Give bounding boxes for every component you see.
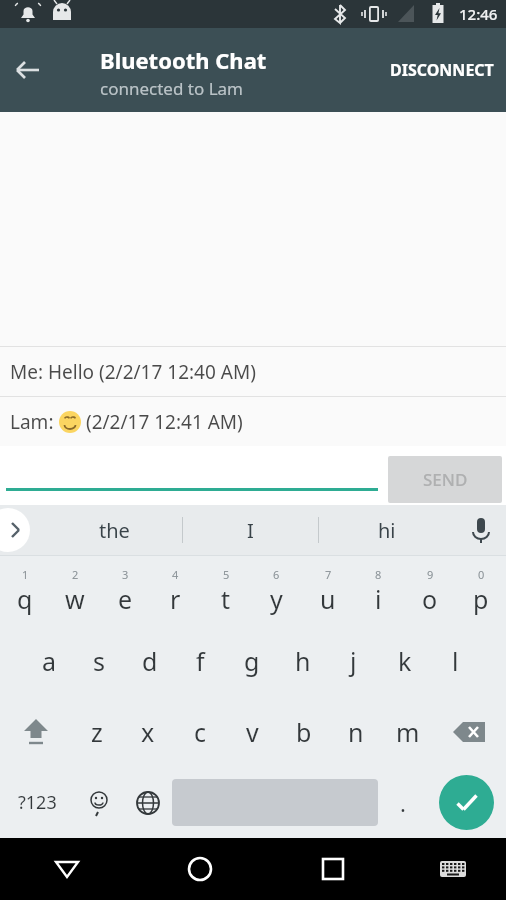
button[interactable]: s xyxy=(74,626,124,696)
staticText: SEND xyxy=(423,468,468,491)
button[interactable]: x xyxy=(122,696,174,767)
button[interactable]: DISCONNECT xyxy=(378,28,506,112)
button[interactable]: g xyxy=(226,626,277,696)
staticText: (2/2/17 12:41 AM) xyxy=(81,409,243,435)
staticText: the xyxy=(99,517,130,544)
button[interactable]: Shift xyxy=(0,696,71,767)
button[interactable]: Delete xyxy=(434,696,506,767)
staticText: g xyxy=(244,644,260,678)
button[interactable]: Recent apps xyxy=(266,838,399,900)
staticText: u xyxy=(320,582,336,616)
staticText: l xyxy=(452,644,459,678)
staticText: w xyxy=(65,582,85,616)
staticText: 2 xyxy=(72,567,79,582)
button[interactable]: hi xyxy=(319,505,454,555)
button[interactable]: ?123 xyxy=(0,767,74,838)
button[interactable]: h xyxy=(277,626,328,696)
staticText: Bluetooth Chat xyxy=(100,45,267,75)
button[interactable]: f xyxy=(175,626,226,696)
staticText: d xyxy=(142,644,158,678)
button[interactable]: n xyxy=(330,696,382,767)
staticText: 8 xyxy=(375,567,382,582)
staticText: c xyxy=(194,715,207,749)
staticText: connected to Lam xyxy=(100,77,243,100)
staticText: 9 xyxy=(427,567,434,582)
button[interactable]: 3 xyxy=(100,556,150,626)
button[interactable]: 1 xyxy=(0,556,50,626)
button[interactable]: SEND xyxy=(388,456,502,503)
button[interactable]: 6 xyxy=(251,556,302,626)
staticText: o xyxy=(422,582,438,616)
button[interactable]: Enter xyxy=(439,775,494,830)
staticText: Lam: xyxy=(10,409,59,435)
staticText: x xyxy=(141,715,155,749)
button[interactable]: 5 xyxy=(200,556,251,626)
button[interactable]: a xyxy=(24,626,74,696)
staticText: f xyxy=(196,644,205,678)
staticText: y xyxy=(270,582,283,616)
staticText: s xyxy=(93,644,105,678)
staticText: m xyxy=(396,715,420,749)
staticText: 0 xyxy=(478,567,485,582)
staticText: p xyxy=(473,582,489,616)
button[interactable]: m xyxy=(382,696,434,767)
staticText: 6 xyxy=(273,567,280,582)
staticText: a xyxy=(42,644,57,678)
staticText: b xyxy=(296,715,312,749)
button[interactable]: Me: Hello (2/2/17 12:40 AM) xyxy=(0,347,506,396)
staticText: ?123 xyxy=(18,790,57,815)
button[interactable]: Change language xyxy=(123,767,172,838)
button[interactable]: Emoji xyxy=(74,767,123,838)
button[interactable]: 9 xyxy=(404,556,455,626)
staticText: 5 xyxy=(223,567,230,582)
button[interactable]: Lam: xyxy=(0,397,506,446)
staticText: q xyxy=(17,582,33,616)
button[interactable]: Hide keyboard xyxy=(399,838,506,900)
button[interactable]: More suggestions xyxy=(0,508,30,552)
staticText: h xyxy=(295,644,311,678)
button[interactable]: b xyxy=(278,696,330,767)
button[interactable]: 2 xyxy=(50,556,100,626)
staticText: 4 xyxy=(172,567,179,582)
staticText: e xyxy=(118,582,133,616)
staticText: j xyxy=(350,644,357,678)
button[interactable]: the xyxy=(46,505,182,555)
button[interactable]: d xyxy=(124,626,175,696)
button[interactable]: v xyxy=(226,696,278,767)
staticText: 12:46 xyxy=(459,4,498,24)
staticText: r xyxy=(170,582,181,616)
button[interactable]: I xyxy=(183,505,318,555)
staticText: t xyxy=(221,582,231,616)
staticText: i xyxy=(375,582,382,616)
staticText: n xyxy=(348,715,364,749)
staticText: Me: Hello (2/2/17 12:40 AM) xyxy=(10,359,256,385)
button[interactable]: Navigate up xyxy=(0,42,56,98)
staticText: k xyxy=(398,644,412,678)
staticText: z xyxy=(91,715,103,749)
staticText: 1 xyxy=(22,567,29,582)
button[interactable]: 4 xyxy=(150,556,200,626)
button[interactable]: 0 xyxy=(455,556,506,626)
button[interactable]: z xyxy=(71,696,122,767)
staticText: . xyxy=(400,788,406,818)
staticText: 3 xyxy=(122,567,129,582)
button[interactable]: Voice input xyxy=(456,505,506,555)
staticText: I xyxy=(247,517,254,544)
button[interactable]: . xyxy=(378,767,427,838)
button[interactable]: c xyxy=(174,696,226,767)
button[interactable]: Back xyxy=(0,838,133,900)
staticText: hi xyxy=(378,517,396,544)
staticText: 7 xyxy=(325,567,332,582)
staticText: v xyxy=(246,715,259,749)
button[interactable]: k xyxy=(379,626,430,696)
button[interactable]: 7 xyxy=(302,556,353,626)
button[interactable]: l xyxy=(430,626,481,696)
staticText: DISCONNECT xyxy=(390,59,494,81)
button[interactable]: 8 xyxy=(353,556,404,626)
button[interactable]: Home xyxy=(133,838,266,900)
button[interactable]: j xyxy=(328,626,379,696)
